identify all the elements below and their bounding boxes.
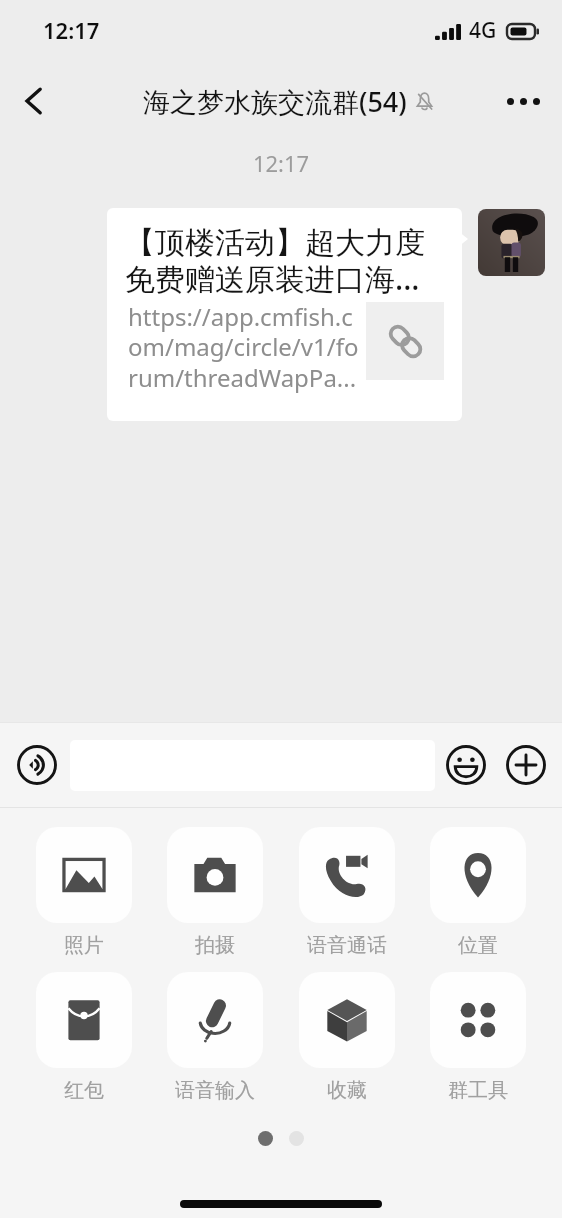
staticText: 群工具 xyxy=(448,1078,508,1103)
button[interactable]: 红包 xyxy=(36,972,132,1103)
staticText: 位置 xyxy=(458,933,498,958)
button[interactable]: 语音通话 xyxy=(299,827,395,958)
button[interactable]: 位置 xyxy=(430,827,526,958)
staticText: 【顶楼活动】超大力度 免费赠送原装进口海... xyxy=(125,224,425,299)
button[interactable]: More options xyxy=(493,71,553,131)
staticText: 4G xyxy=(469,16,497,45)
staticText: 红包 xyxy=(64,1078,104,1103)
button[interactable]: Emoji xyxy=(441,740,491,790)
staticText: 12:17 xyxy=(0,148,562,178)
staticText: 语音通话 xyxy=(307,933,387,958)
staticText: 拍摄 xyxy=(195,933,235,958)
staticText: 语音输入 xyxy=(175,1078,255,1103)
button[interactable]: 群工具 xyxy=(430,972,526,1103)
staticText: 12:17 xyxy=(43,15,100,45)
button[interactable]: 【顶楼活动】超大力度 免费赠送原装进口海... xyxy=(107,208,462,421)
button[interactable]: 拍摄 xyxy=(167,827,263,958)
button[interactable]: More xyxy=(501,740,551,790)
staticText: 海之梦水族交流群(54) xyxy=(143,83,407,120)
button[interactable]: Avatar xyxy=(478,209,545,276)
staticText: https://app.cmfish.c om/mag/circle/v1/fo… xyxy=(128,300,390,394)
button[interactable]: 语音输入 xyxy=(167,972,263,1103)
button[interactable]: 收藏 xyxy=(299,972,395,1103)
button[interactable]: Back xyxy=(4,71,64,131)
staticText: 收藏 xyxy=(327,1078,367,1103)
button[interactable]: 照片 xyxy=(36,827,132,958)
button[interactable]: Voice message xyxy=(12,740,62,790)
staticText: 照片 xyxy=(64,933,104,958)
